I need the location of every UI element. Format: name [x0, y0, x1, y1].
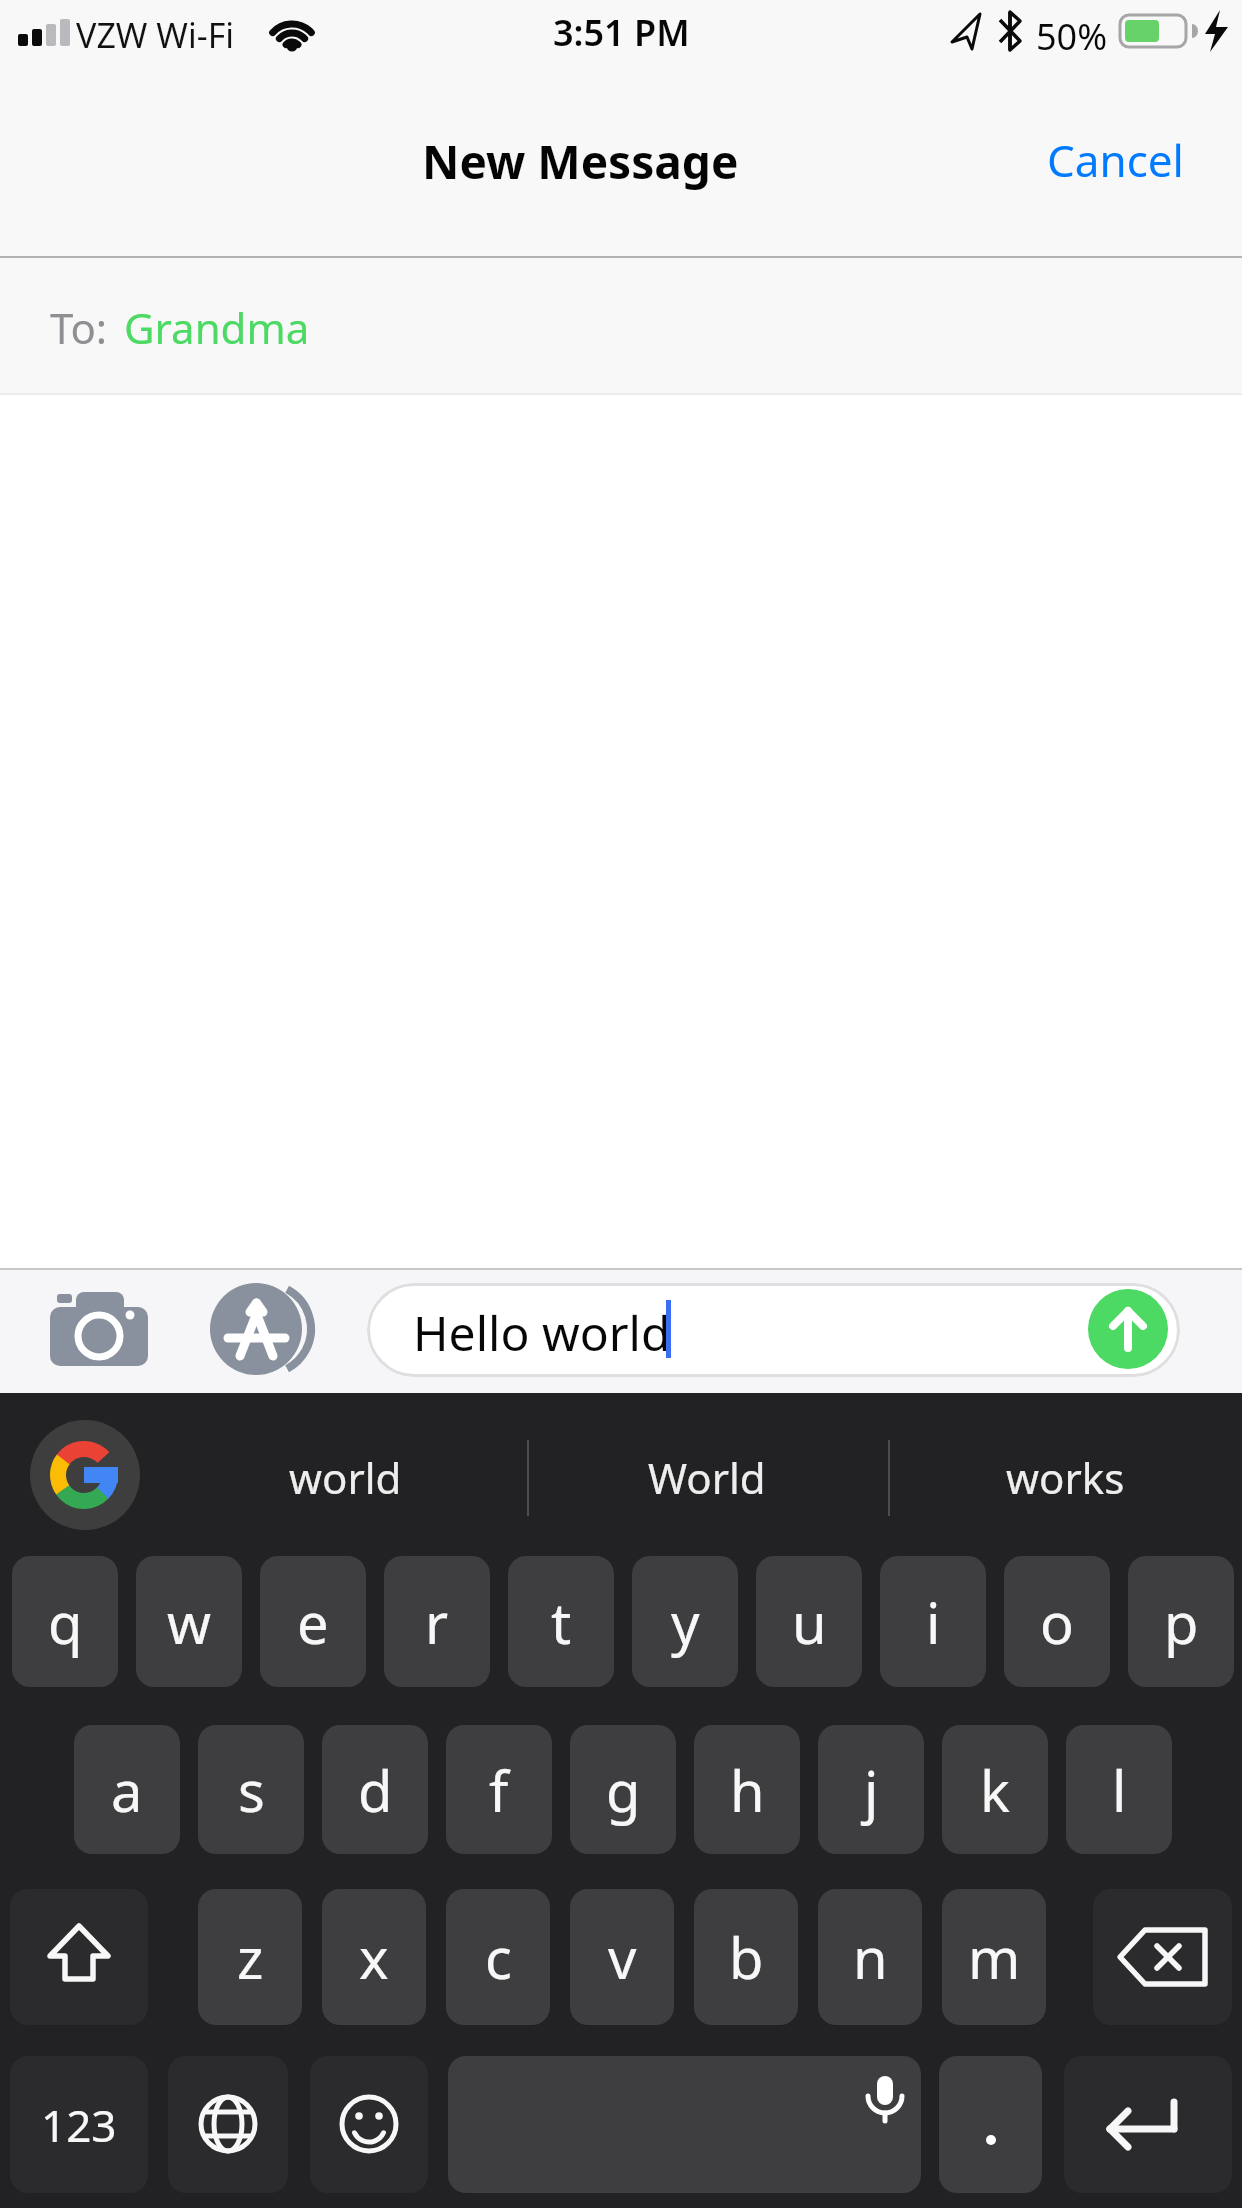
button[interactable]: y: [632, 1556, 738, 1687]
staticText: Grandma: [124, 299, 310, 356]
staticText: q: [48, 1584, 83, 1660]
button[interactable]: [1064, 2056, 1232, 2193]
staticText: 3:51 PM: [553, 8, 690, 52]
button[interactable]: works: [900, 1432, 1230, 1522]
button[interactable]: g: [570, 1725, 676, 1854]
staticText: w: [167, 1584, 212, 1660]
button[interactable]: [310, 2056, 428, 2193]
button[interactable]: [30, 1420, 140, 1530]
button[interactable]: c: [446, 1889, 550, 2025]
staticText: 123: [41, 2095, 117, 2155]
button[interactable]: [448, 2056, 921, 2193]
button[interactable]: u: [756, 1556, 862, 1687]
button[interactable]: [1088, 1289, 1168, 1369]
button[interactable]: [367, 1283, 1180, 1377]
button[interactable]: e: [260, 1556, 366, 1687]
staticText: VZW Wi-Fi: [76, 12, 235, 58]
staticText: y: [671, 1584, 700, 1660]
button[interactable]: z: [198, 1889, 302, 2025]
button[interactable]: w: [136, 1556, 242, 1687]
button[interactable]: a: [74, 1725, 180, 1854]
staticText: t: [551, 1584, 572, 1660]
button[interactable]: [1093, 1889, 1232, 2025]
staticText: v: [608, 1919, 637, 1995]
button[interactable]: o: [1004, 1556, 1110, 1687]
button[interactable]: s: [198, 1725, 304, 1854]
staticText: g: [606, 1752, 641, 1828]
button[interactable]: h: [694, 1725, 800, 1854]
button[interactable]: k: [942, 1725, 1048, 1854]
staticText: z: [237, 1919, 264, 1995]
button[interactable]: j: [818, 1725, 924, 1854]
staticText: r: [425, 1584, 449, 1660]
staticText: c: [485, 1919, 512, 1995]
staticText: u: [792, 1584, 827, 1660]
staticText: s: [238, 1752, 265, 1828]
staticText: f: [489, 1752, 509, 1828]
button[interactable]: f: [446, 1725, 552, 1854]
button[interactable]: World: [542, 1432, 872, 1522]
button[interactable]: [200, 1269, 324, 1389]
button[interactable]: t: [508, 1556, 614, 1687]
button[interactable]: [939, 2056, 1042, 2193]
staticText: b: [729, 1919, 764, 1995]
staticText: 50%: [1036, 12, 1108, 61]
button[interactable]: [10, 1889, 148, 2025]
staticText: h: [730, 1752, 765, 1828]
staticText: p: [1164, 1584, 1199, 1660]
staticText: i: [926, 1584, 941, 1660]
staticText: d: [358, 1752, 393, 1828]
staticText: l: [1112, 1752, 1127, 1828]
button[interactable]: Cancel: [1020, 126, 1210, 194]
staticText: a: [111, 1752, 143, 1828]
button[interactable]: m: [942, 1889, 1046, 2025]
staticText: World: [648, 1449, 766, 1506]
staticText: Hello world: [413, 1300, 671, 1365]
button[interactable]: i: [880, 1556, 986, 1687]
button[interactable]: r: [384, 1556, 490, 1687]
button[interactable]: world: [180, 1432, 510, 1522]
button[interactable]: [0, 258, 1242, 394]
button[interactable]: [168, 2056, 288, 2193]
staticText: k: [980, 1752, 1010, 1828]
button[interactable]: x: [322, 1889, 426, 2025]
button[interactable]: b: [694, 1889, 798, 2025]
staticText: x: [359, 1919, 389, 1995]
staticText: j: [864, 1752, 879, 1828]
button[interactable]: v: [570, 1889, 674, 2025]
button[interactable]: n: [818, 1889, 922, 2025]
staticText: e: [297, 1584, 329, 1660]
button[interactable]: 123: [10, 2056, 148, 2193]
staticText: Cancel: [1047, 130, 1184, 190]
button[interactable]: d: [322, 1725, 428, 1854]
button[interactable]: l: [1066, 1725, 1172, 1854]
staticText: o: [1040, 1584, 1074, 1660]
staticText: works: [1006, 1449, 1125, 1506]
staticText: New Message: [422, 130, 739, 190]
button[interactable]: [40, 1285, 160, 1377]
button[interactable]: q: [12, 1556, 118, 1687]
staticText: world: [289, 1449, 402, 1506]
staticText: To:: [50, 299, 108, 356]
staticText: m: [968, 1919, 1021, 1995]
button[interactable]: p: [1128, 1556, 1234, 1687]
staticText: n: [853, 1919, 888, 1995]
